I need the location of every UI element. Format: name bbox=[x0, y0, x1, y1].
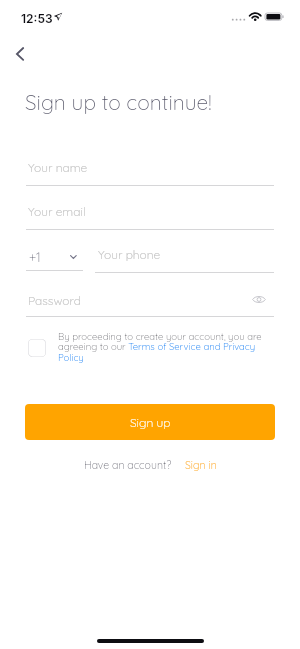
staticText: Password bbox=[28, 293, 81, 308]
button[interactable]: Sign up bbox=[25, 404, 275, 440]
staticText: Your email bbox=[28, 204, 86, 219]
staticText: Your name bbox=[28, 160, 88, 175]
button[interactable]: +1 bbox=[26, 247, 83, 271]
staticText: By proceeding to create your account, yo… bbox=[58, 330, 263, 364]
staticText: Sign up to continue! bbox=[25, 89, 212, 115]
button[interactable]: Sign in bbox=[185, 458, 217, 471]
staticText: +1 bbox=[29, 249, 42, 265]
button[interactable]: Password bbox=[26, 293, 274, 317]
staticText: Sign up bbox=[130, 415, 171, 430]
staticText: 12:53 bbox=[21, 11, 53, 26]
button[interactable]: Show password bbox=[249, 290, 269, 308]
button[interactable]: Agree to terms bbox=[28, 339, 46, 357]
staticText: Sign in bbox=[185, 458, 217, 471]
button[interactable]: Your email bbox=[26, 204, 274, 230]
staticText: Have an account? bbox=[84, 458, 172, 471]
staticText: Your phone bbox=[98, 247, 161, 262]
button[interactable]: Your phone bbox=[95, 247, 274, 273]
button[interactable]: Back bbox=[8, 42, 32, 66]
button[interactable]: Your name bbox=[26, 160, 274, 186]
